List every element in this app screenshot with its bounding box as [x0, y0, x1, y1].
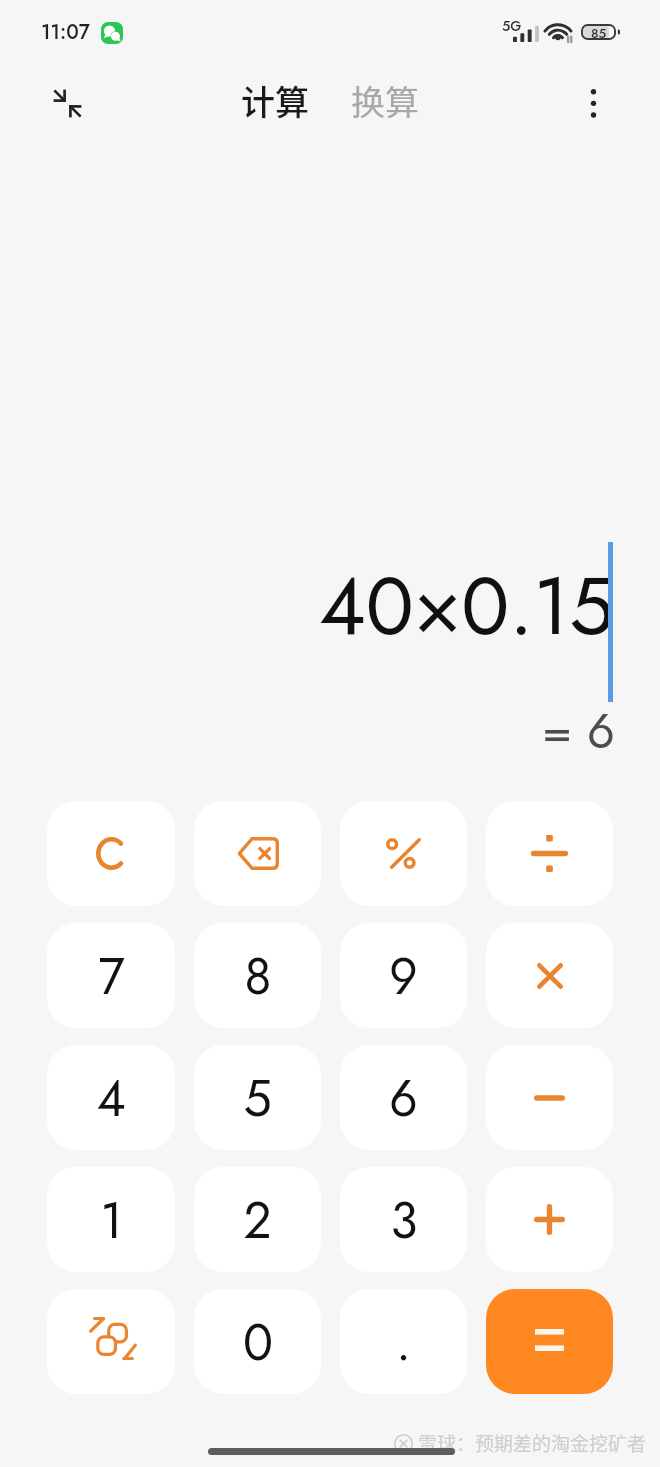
staticText: 6: [389, 1062, 418, 1134]
button[interactable]: 0: [194, 1289, 321, 1394]
staticText: .: [396, 1306, 411, 1378]
staticText: 7: [98, 940, 125, 1012]
staticText: 雪球：预期差的淘金挖矿者: [418, 1429, 647, 1457]
button[interactable]: 换算: [346, 72, 424, 129]
button[interactable]: Equals: [486, 1289, 613, 1394]
button[interactable]: 1: [47, 1167, 175, 1272]
staticText: 9: [389, 940, 418, 1012]
staticText: 换算: [351, 76, 419, 125]
staticText: 5G: [502, 16, 522, 36]
button[interactable]: [47, 801, 175, 906]
staticText: 1: [100, 1184, 123, 1256]
button[interactable]: Divide: [486, 801, 613, 906]
button[interactable]: 8: [194, 923, 321, 1028]
staticText: 40×0.15: [319, 548, 615, 664]
button[interactable]: 7: [47, 923, 175, 1028]
staticText: = 6: [542, 696, 616, 767]
button[interactable]: 5: [194, 1045, 321, 1150]
button[interactable]: .: [340, 1289, 467, 1394]
staticText: 2: [243, 1184, 272, 1256]
button[interactable]: 2: [194, 1167, 321, 1272]
staticText: 5: [243, 1062, 272, 1134]
staticText: 0: [243, 1306, 273, 1378]
button[interactable]: Collapse: [41, 77, 93, 129]
button[interactable]: Subtract: [486, 1045, 613, 1150]
button[interactable]: Add: [486, 1167, 613, 1272]
button[interactable]: Multiply: [486, 923, 613, 1028]
button[interactable]: [340, 801, 467, 906]
button[interactable]: 3: [340, 1167, 467, 1272]
staticText: 11:07: [41, 18, 90, 47]
button[interactable]: Delete: [194, 801, 321, 906]
button[interactable]: 6: [340, 1045, 467, 1150]
staticText: 8: [244, 940, 272, 1012]
button[interactable]: Scientific mode: [47, 1289, 175, 1394]
button[interactable]: More options: [567, 77, 619, 129]
staticText: 4: [96, 1062, 126, 1134]
button[interactable]: 4: [47, 1045, 175, 1150]
button[interactable]: 9: [340, 923, 467, 1028]
staticText: 85: [591, 24, 607, 40]
staticText: 计算: [241, 76, 309, 125]
button[interactable]: 计算: [236, 72, 314, 129]
staticText: 3: [390, 1184, 418, 1256]
